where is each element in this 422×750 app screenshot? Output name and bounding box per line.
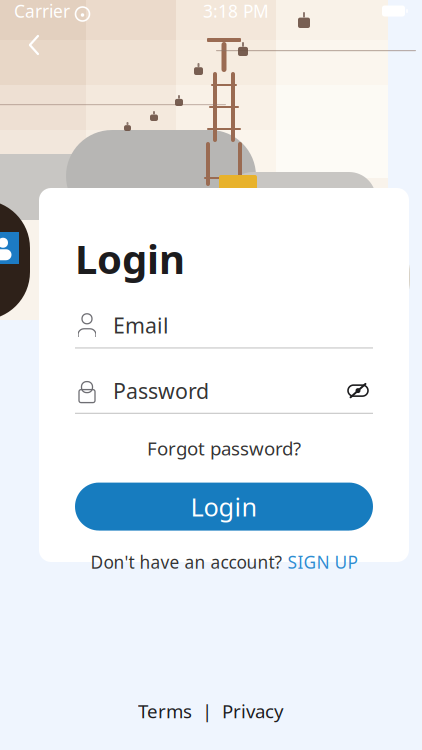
staticText: Privacy [222,699,284,723]
button[interactable]: Terms [132,693,198,729]
staticText: Don't have an account? [90,551,287,574]
staticText: Password [113,376,209,405]
staticText: Terms [138,699,192,723]
button[interactable]: Forgot password? [75,428,373,469]
button[interactable]: SIGN UP [287,551,357,574]
staticText: Email [113,311,169,339]
button[interactable]: Show password [343,378,373,404]
staticText: Carrier [14,0,70,22]
staticText: Forgot password? [147,436,301,461]
staticText: | [202,699,212,723]
staticText: SIGN UP [287,551,357,574]
staticText: Login [190,490,257,523]
button[interactable]: Back [12,23,56,67]
button[interactable]: Privacy [216,693,290,729]
staticText: 3:18 PM [203,0,269,22]
button[interactable]: Login [75,483,373,531]
staticText: Login [75,232,185,285]
